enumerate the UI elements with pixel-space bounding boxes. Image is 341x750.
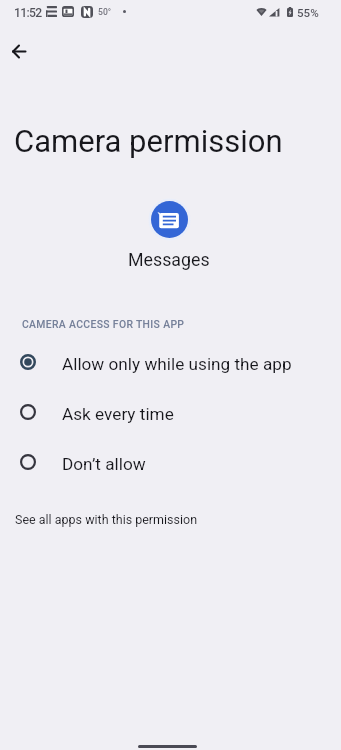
staticText: Don’t allow: [62, 454, 146, 474]
staticText: 55%: [297, 6, 319, 20]
button[interactable]: See all apps with this permission: [8, 503, 198, 533]
staticText: Messages: [128, 249, 210, 270]
button[interactable]: Back: [0, 31, 39, 71]
staticText: Ask every time: [62, 404, 174, 424]
staticText: 50°: [98, 7, 112, 17]
staticText: 11:52: [14, 6, 42, 20]
button[interactable]: Allow only while using the app: [0, 337, 341, 387]
staticText: CAMERA ACCESS FOR THIS APP: [22, 318, 185, 330]
button[interactable]: Ask every time: [0, 387, 341, 437]
button[interactable]: Don’t allow: [0, 437, 341, 487]
staticText: See all apps with this permission: [15, 512, 198, 527]
staticText: Camera permission: [14, 123, 283, 159]
staticText: Allow only while using the app: [62, 354, 292, 374]
